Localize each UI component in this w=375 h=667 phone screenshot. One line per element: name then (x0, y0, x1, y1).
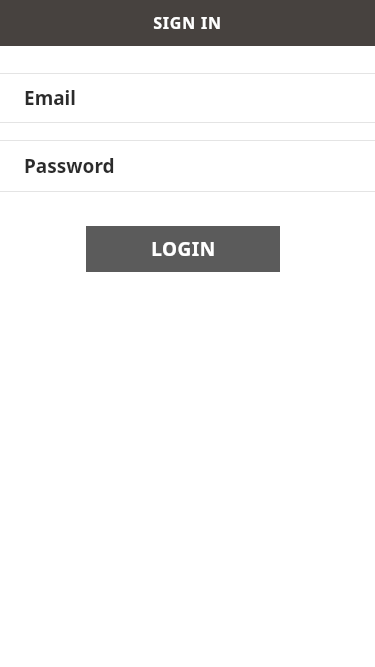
button[interactable]: Email (0, 74, 375, 122)
staticText: Email (24, 85, 76, 111)
staticText: LOGIN (151, 236, 216, 262)
staticText: Password (24, 153, 115, 179)
button[interactable]: LOGIN (86, 226, 280, 272)
button[interactable]: Password (0, 141, 375, 191)
staticText: SIGN IN (153, 12, 222, 34)
